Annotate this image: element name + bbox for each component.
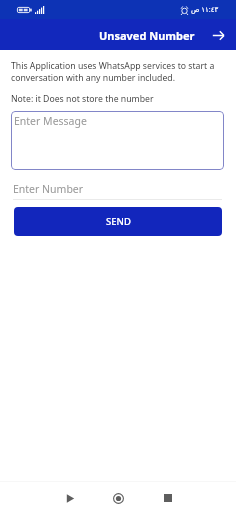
staticText: Enter Number <box>13 182 84 196</box>
button[interactable]: Enter Number <box>13 182 222 200</box>
button[interactable]: Enter Message <box>11 111 224 170</box>
button[interactable]: Home <box>105 485 131 511</box>
button[interactable]: Recents <box>153 485 179 511</box>
staticText: Note: it Does not store the number <box>11 93 154 105</box>
staticText: Enter Message <box>14 114 87 128</box>
staticText: SEND <box>106 215 131 228</box>
button[interactable]: Forward <box>207 24 229 46</box>
staticText: ١١:٤٣ ص <box>191 5 219 15</box>
button[interactable]: Back <box>57 485 83 511</box>
staticText: This Application uses WhatsApp services … <box>11 60 226 84</box>
staticText: Unsaved Number <box>99 28 195 43</box>
button[interactable]: SEND <box>14 207 222 236</box>
